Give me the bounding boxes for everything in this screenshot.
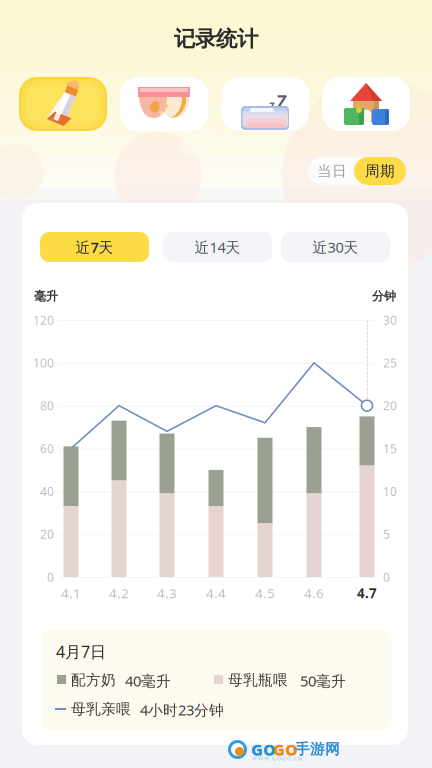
button[interactable]: 换尿布记录: [120, 77, 208, 131]
staticText: 4.4: [206, 584, 226, 602]
staticText: 60: [40, 440, 54, 456]
staticText: 100: [33, 355, 54, 371]
staticText: 母乳亲喂: [71, 700, 131, 718]
staticText: 近30天: [312, 237, 358, 257]
staticText: 4.1: [61, 584, 81, 602]
staticText: 近7天: [75, 237, 113, 257]
staticText: 40: [40, 483, 54, 499]
staticText: 配方奶: [71, 671, 116, 689]
staticText: z: [269, 97, 275, 113]
staticText: 25: [383, 355, 397, 371]
button[interactable]: 近30天: [281, 232, 390, 262]
staticText: 4.6: [304, 584, 324, 602]
button[interactable]: 睡眠记录: [221, 77, 309, 131]
staticText: 40毫升: [125, 671, 171, 690]
staticText: 30: [383, 312, 397, 328]
staticText: 当日: [317, 162, 347, 180]
staticText: 10: [383, 483, 397, 499]
staticText: 母乳瓶喂: [228, 671, 288, 689]
button[interactable]: 玩耍记录: [322, 77, 410, 131]
staticText: 50毫升: [300, 671, 346, 690]
staticText: 0: [47, 569, 54, 585]
staticText: 4.3: [157, 584, 177, 602]
staticText: 手游网: [295, 740, 340, 758]
staticText: 120: [33, 312, 54, 328]
button[interactable]: 近14天: [163, 232, 272, 262]
staticText: 4.5: [255, 584, 275, 602]
staticText: 20: [383, 398, 397, 414]
staticText: GO: [273, 739, 298, 760]
staticText: 周期: [365, 162, 395, 180]
staticText: 20: [40, 526, 54, 542]
staticText: 毫升: [34, 289, 58, 304]
staticText: 记录统计: [174, 26, 258, 52]
staticText: 0: [383, 569, 390, 585]
staticText: 分钟: [372, 289, 396, 304]
staticText: GO: [251, 739, 276, 760]
staticText: 4.7: [357, 584, 377, 602]
staticText: Z: [277, 90, 287, 113]
staticText: 4.2: [109, 584, 129, 602]
button[interactable]: 近7天: [40, 232, 149, 262]
button[interactable]: 周期: [354, 157, 406, 185]
staticText: 近14天: [194, 237, 240, 257]
staticText: 4小时23分钟: [140, 700, 224, 719]
button[interactable]: 喂奶记录: [19, 77, 107, 131]
staticText: 4月7日: [56, 641, 106, 662]
staticText: W W W . G O G O . C N: [252, 755, 302, 762]
staticText: 80: [40, 398, 54, 414]
button[interactable]: 当日: [308, 157, 356, 185]
staticText: 15: [383, 440, 397, 456]
staticText: 5: [383, 526, 390, 542]
